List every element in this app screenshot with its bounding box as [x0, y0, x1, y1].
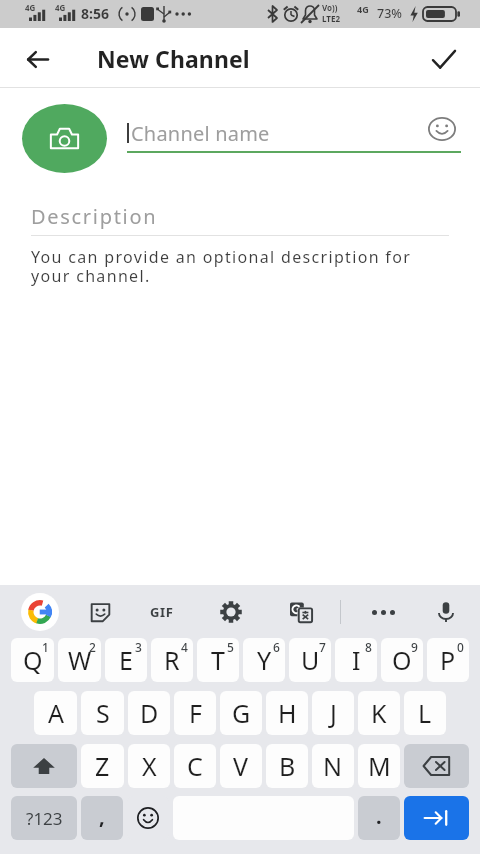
staticText: R	[164, 643, 180, 677]
staticText: O	[392, 643, 412, 677]
staticText: E	[119, 643, 133, 677]
button[interactable]: ,	[81, 796, 123, 840]
staticText: H	[278, 696, 297, 730]
button[interactable]: ?123	[11, 796, 77, 840]
button[interactable]: Settings	[213, 594, 249, 630]
button[interactable]: K	[358, 691, 400, 735]
button[interactable]: Set channel photo	[22, 104, 107, 173]
button[interactable]: Translate	[283, 594, 319, 630]
button[interactable]: B	[266, 744, 308, 788]
staticText: You can provide an optional description …	[31, 246, 412, 287]
staticText: .	[376, 803, 382, 830]
staticText: J	[330, 696, 337, 730]
button[interactable]: C	[174, 744, 216, 788]
button[interactable]: More options	[365, 594, 401, 630]
button[interactable]: S	[81, 691, 124, 735]
staticText: Q	[23, 643, 43, 677]
button[interactable]: O	[381, 638, 423, 682]
button[interactable]: V	[220, 744, 262, 788]
staticText: 3	[135, 639, 142, 655]
staticText: 8	[365, 639, 372, 655]
button[interactable]: Google search	[21, 593, 59, 631]
button[interactable]: J	[312, 691, 354, 735]
button[interactable]: H	[266, 691, 308, 735]
staticText: A	[48, 696, 64, 730]
staticText: M	[368, 749, 391, 783]
button[interactable]: Next	[404, 796, 469, 840]
staticText: 5	[227, 639, 234, 655]
staticText: 9	[411, 639, 418, 655]
button[interactable]: L	[404, 691, 446, 735]
staticText: Channel name	[131, 120, 270, 147]
staticText: X	[142, 749, 157, 783]
staticText: C	[187, 749, 203, 783]
button[interactable]: Y	[243, 638, 285, 682]
button[interactable]: Shift	[11, 744, 77, 788]
button[interactable]: .	[358, 796, 400, 840]
button[interactable]: Stickers	[82, 594, 118, 630]
button[interactable]: Done	[416, 31, 472, 87]
staticText: Vo))	[322, 2, 338, 13]
button[interactable]: M	[358, 744, 400, 788]
button[interactable]: D	[128, 691, 170, 735]
staticText: 6	[273, 639, 280, 655]
staticText: Y	[257, 643, 272, 677]
staticText: GIF	[150, 603, 174, 621]
button[interactable]: U	[289, 638, 331, 682]
staticText: W	[68, 643, 92, 677]
staticText: K	[371, 696, 387, 730]
staticText: 0	[457, 639, 464, 655]
staticText: New Channel	[97, 43, 250, 74]
staticText: 4G	[357, 3, 369, 15]
button[interactable]: Back	[10, 31, 66, 87]
staticText: D	[140, 696, 159, 730]
button[interactable]: W	[58, 638, 101, 682]
staticText: N	[323, 749, 343, 783]
button[interactable]: I	[335, 638, 377, 682]
button[interactable]: G	[220, 691, 262, 735]
staticText: 73%	[377, 5, 402, 22]
staticText: G	[232, 696, 251, 730]
staticText: V	[233, 749, 249, 783]
button[interactable]: R	[151, 638, 193, 682]
staticText: 1	[42, 639, 49, 655]
button[interactable]: Backspace	[404, 744, 469, 788]
staticText: 7	[319, 639, 326, 655]
button[interactable]: X	[128, 744, 170, 788]
staticText: 2	[89, 639, 96, 655]
staticText: Z	[95, 749, 110, 783]
staticText: LTE2	[322, 13, 340, 24]
button[interactable]: Emoji	[426, 113, 458, 145]
staticText: 4	[181, 639, 188, 655]
staticText: Description	[31, 203, 158, 230]
staticText: 4G	[25, 2, 36, 13]
staticText: ?123	[26, 807, 63, 830]
button[interactable]: Z	[81, 744, 124, 788]
button[interactable]: P	[427, 638, 469, 682]
button[interactable]: Voice input	[426, 592, 466, 632]
button[interactable]: F	[174, 691, 216, 735]
staticText: 8:56	[81, 4, 109, 23]
button[interactable]: Q	[11, 638, 54, 682]
staticText: P	[440, 643, 456, 677]
staticText: B	[279, 749, 296, 783]
staticText: I	[352, 643, 361, 677]
staticText: S	[96, 696, 110, 730]
staticText: T	[211, 643, 225, 677]
button[interactable]: A	[34, 691, 77, 735]
button[interactable]: T	[197, 638, 239, 682]
button[interactable]: Emoji keyboard	[127, 796, 169, 840]
staticText: 4G	[55, 2, 66, 13]
staticText: ,	[99, 803, 105, 830]
button[interactable]: E	[105, 638, 147, 682]
button[interactable]: GIF	[144, 594, 180, 630]
button[interactable]: N	[312, 744, 354, 788]
staticText: U	[301, 643, 320, 677]
staticText: L	[418, 696, 432, 730]
staticText: F	[189, 696, 202, 730]
